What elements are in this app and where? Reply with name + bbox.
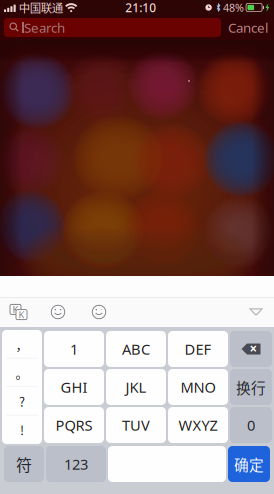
button[interactable]: TUV xyxy=(106,407,166,443)
staticText: WXYZ xyxy=(178,415,217,435)
staticText: ， xyxy=(15,335,28,353)
button[interactable]: Cancel xyxy=(221,16,272,38)
staticText: 21:10 xyxy=(125,0,156,15)
button[interactable] xyxy=(108,446,226,482)
staticText: MNO xyxy=(180,377,215,397)
button[interactable]: GHI xyxy=(44,369,104,405)
staticText: 48% xyxy=(223,0,244,15)
button[interactable]: Translate xyxy=(0,297,37,327)
button[interactable]: 1 xyxy=(44,331,104,367)
button[interactable]: 0 xyxy=(230,407,272,443)
staticText: DEF xyxy=(184,339,211,359)
button[interactable]: Hide keyboard xyxy=(242,297,270,327)
button[interactable]: 符 xyxy=(4,446,44,482)
staticText: Cancel xyxy=(228,19,268,36)
button[interactable]: MNO xyxy=(168,369,228,405)
staticText: ! xyxy=(20,421,24,439)
staticText: 确定 xyxy=(234,453,264,475)
staticText: 换行 xyxy=(236,376,266,398)
staticText: 。 xyxy=(15,364,28,382)
button[interactable]: Stickers xyxy=(79,297,119,327)
staticText: K xyxy=(18,308,24,321)
button[interactable]: JKL xyxy=(106,369,166,405)
button[interactable]: Punctuation xyxy=(2,330,42,444)
staticText: 0 xyxy=(247,415,255,435)
button[interactable]: 确定 xyxy=(228,446,270,482)
button[interactable]: 123 xyxy=(46,446,106,482)
button[interactable]: Emoji xyxy=(37,297,79,327)
staticText: TUV xyxy=(122,415,150,435)
staticText: Search xyxy=(24,19,65,36)
button[interactable]: ABC xyxy=(106,331,166,367)
staticText: K xyxy=(12,303,18,316)
staticText: ABC xyxy=(122,339,150,359)
button[interactable]: WXYZ xyxy=(168,407,228,443)
button[interactable]: PQRS xyxy=(44,407,104,443)
staticText: 符 xyxy=(16,452,32,476)
staticText: 中国联通 xyxy=(19,0,63,16)
staticText: ? xyxy=(19,392,25,410)
staticText: JKL xyxy=(125,377,146,397)
button[interactable]: 换行 xyxy=(230,369,272,405)
staticText: 1 xyxy=(70,339,78,359)
staticText: GHI xyxy=(60,377,87,397)
button[interactable]: Delete xyxy=(230,331,272,367)
staticText: × xyxy=(249,340,257,357)
staticText: PQRS xyxy=(55,415,92,435)
button[interactable]: Search xyxy=(4,18,221,37)
staticText: 123 xyxy=(64,454,88,474)
button[interactable]: DEF xyxy=(168,331,228,367)
